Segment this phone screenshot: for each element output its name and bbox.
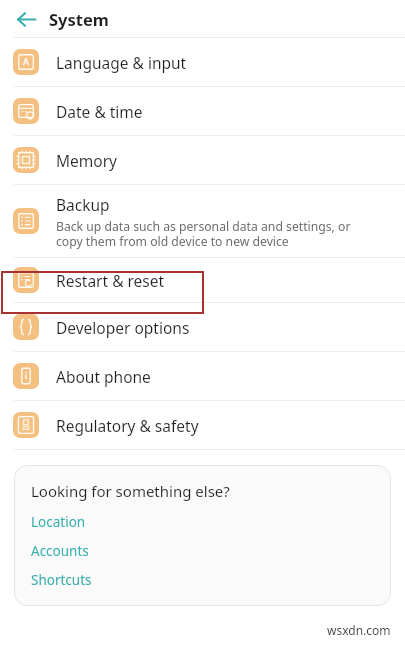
button[interactable]: Restart & reset <box>0 258 405 302</box>
staticText: About phone <box>56 366 151 387</box>
staticText: Backup <box>56 194 110 215</box>
button[interactable]: Developer options <box>0 303 405 351</box>
staticText: System <box>49 8 109 30</box>
staticText: Accounts <box>31 542 89 560</box>
staticText: wsxdn.com <box>327 622 391 638</box>
button[interactable]: Accounts <box>31 542 89 560</box>
button[interactable]: Regulatory & safety <box>0 401 405 449</box>
staticText: Back up data such as personal data and s… <box>56 218 351 249</box>
staticText: Regulatory & safety <box>56 415 199 436</box>
button[interactable]: About phone <box>0 352 405 400</box>
staticText: Shortcuts <box>31 571 92 589</box>
staticText: Date & time <box>56 101 143 122</box>
staticText: Memory <box>56 150 117 171</box>
button[interactable]: Shortcuts <box>31 571 92 589</box>
staticText: Developer options <box>56 317 190 338</box>
staticText: Location <box>31 513 86 531</box>
button[interactable]: Back <box>11 4 41 34</box>
button[interactable]: Memory <box>0 136 405 184</box>
staticText: Restart & reset <box>56 270 165 291</box>
button[interactable]: Language & input <box>0 38 405 86</box>
button[interactable]: Backup <box>0 185 405 257</box>
button[interactable]: Date & time <box>0 87 405 135</box>
button[interactable]: Location <box>31 513 86 531</box>
staticText: Language & input <box>56 52 187 73</box>
staticText: Looking for something else? <box>31 481 230 501</box>
